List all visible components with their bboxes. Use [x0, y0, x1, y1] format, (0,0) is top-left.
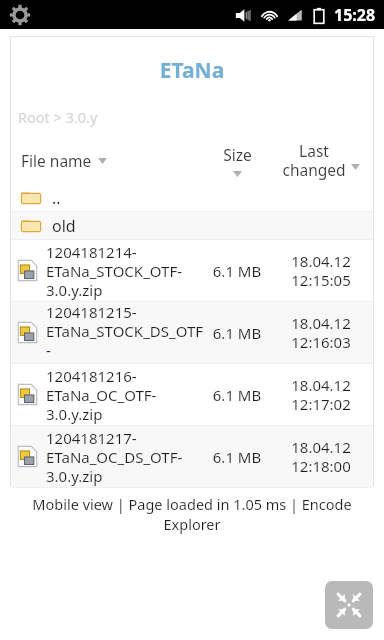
staticText: old	[52, 215, 76, 237]
button[interactable]: ..	[11, 184, 373, 211]
staticText: 6.1 MB	[207, 447, 267, 467]
staticText: Root > 3.0.y	[18, 107, 373, 127]
staticText: 1204181215- ETaNa_STOCK_DS_OTF- 3.0.y.zi…	[46, 302, 207, 363]
staticText: 1204181217- ETaNa_OC_DS_OTF- 3.0.y.zip	[46, 428, 207, 486]
button[interactable]: 1204181215- ETaNa_STOCK_DS_OTF- 3.0.y.zi…	[11, 302, 373, 363]
staticText: Last changed	[282, 140, 346, 180]
staticText: 6.1 MB	[207, 323, 267, 343]
staticText: Size	[223, 144, 252, 165]
button[interactable]: old	[11, 212, 373, 239]
button[interactable]: 1204181214- ETaNa_STOCK_OTF- 3.0.y.zip	[11, 240, 373, 301]
button[interactable]: Collapse	[325, 581, 373, 629]
staticText: 6.1 MB	[207, 261, 267, 281]
staticText: ..	[52, 187, 61, 209]
button[interactable]: 1204181217- ETaNa_OC_DS_OTF- 3.0.y.zip	[11, 426, 373, 487]
staticText: File name	[21, 150, 92, 171]
staticText: ETaNa	[11, 56, 373, 85]
button[interactable]: Size	[207, 136, 267, 184]
staticText: Mobile view | Page loaded in 1.05 ms | E…	[10, 494, 374, 534]
staticText: 18.04.12 12:15:05	[273, 251, 369, 290]
staticText: 18.04.12 12:16:03	[273, 313, 369, 352]
staticText: 18.04.12 12:17:02	[273, 375, 369, 414]
button[interactable]: File name	[21, 136, 207, 184]
staticText: 15:28	[334, 4, 376, 26]
staticText: 1204181216- ETaNa_OC_OTF- 3.0.y.zip	[46, 366, 207, 424]
button[interactable]: Last changed	[273, 136, 369, 184]
staticText: 1204181214- ETaNa_STOCK_OTF- 3.0.y.zip	[46, 242, 207, 300]
staticText: 6.1 MB	[207, 385, 267, 405]
staticText: 18.04.12 12:18:00	[273, 437, 369, 476]
button[interactable]: 1204181216- ETaNa_OC_OTF- 3.0.y.zip	[11, 364, 373, 425]
